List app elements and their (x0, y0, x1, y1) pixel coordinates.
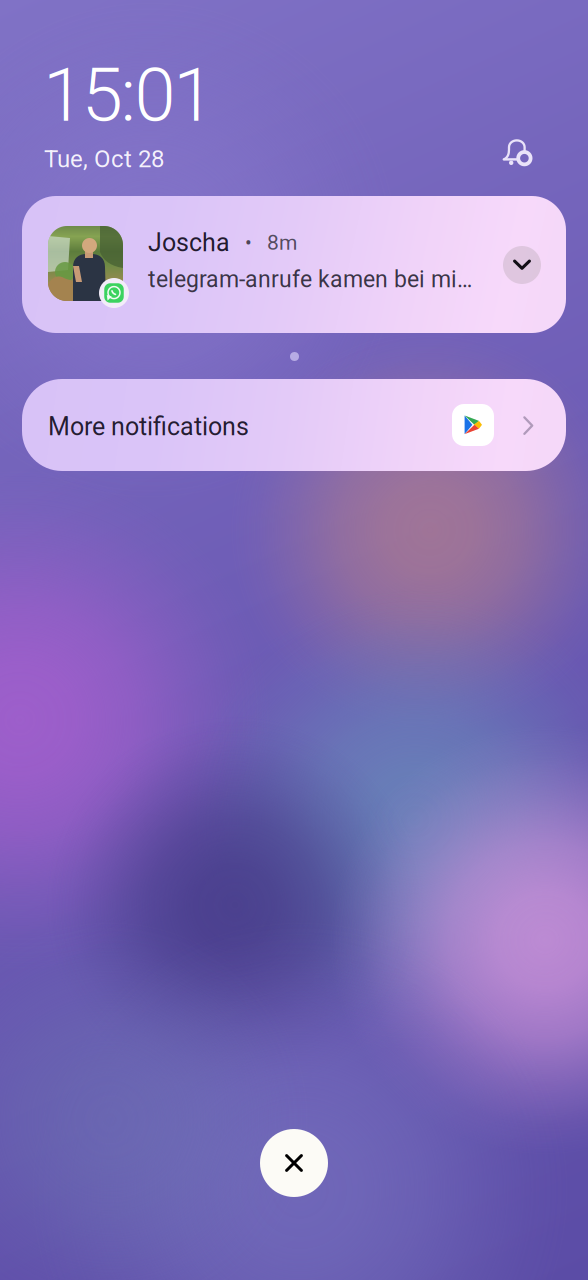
button[interactable]: Notification settings (492, 128, 544, 180)
staticText: More notifications (48, 412, 249, 441)
staticText: 15:01 (43, 52, 214, 139)
button[interactable]: Close (260, 1129, 328, 1197)
staticText: 8m (267, 230, 297, 255)
button[interactable]: Joscha (22, 196, 566, 333)
button[interactable]: More notifications (22, 379, 566, 471)
staticText: Tue, Oct 28 (44, 145, 164, 173)
staticText: telegram-anrufe kamen bei mi… (148, 266, 472, 293)
staticText: • (230, 231, 267, 254)
staticText: Joscha (148, 228, 230, 257)
